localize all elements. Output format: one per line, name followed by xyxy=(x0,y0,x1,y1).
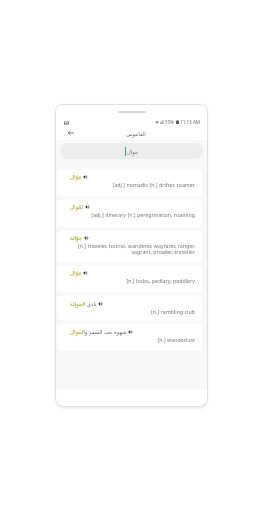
button[interactable]: جَوّال xyxy=(58,266,202,292)
staticText: [adj.] itinerary [n.] peregrination, roa… xyxy=(70,211,195,218)
staticText: جَوّال xyxy=(70,174,82,180)
button[interactable]: شهوة حب السفر والجوال xyxy=(58,324,202,351)
button[interactable]: نادي الجوالة xyxy=(58,296,202,320)
staticText: جوال xyxy=(127,149,139,155)
staticText: 55% xyxy=(165,119,175,125)
staticText: [n.] rambling club xyxy=(70,308,195,315)
staticText: تَجْوال xyxy=(70,204,84,210)
staticText: [n.] wanderlust xyxy=(70,336,195,343)
staticText: جَوّال xyxy=(70,270,82,276)
button[interactable]: تَجْوال xyxy=(58,200,202,227)
staticText: 11:13 AM xyxy=(180,119,201,125)
staticText: جَوّالة xyxy=(70,235,83,241)
staticText: [adj.] nomadic [n.] drifter, roamer xyxy=(70,181,195,188)
button[interactable]: جَوّالة xyxy=(58,231,202,262)
staticText: القاموس xyxy=(126,131,146,137)
staticText: [n.] hobo, pedlary, peddlery xyxy=(70,277,195,284)
button[interactable]: جوال xyxy=(60,143,203,159)
button[interactable]: Back xyxy=(64,126,77,139)
staticText: [n.] traveler, tourist, wanderer, wayfar… xyxy=(70,242,195,256)
staticText: نادي الجوالة xyxy=(70,300,97,307)
staticText: شهوة حب السفر والجوال xyxy=(70,328,127,335)
button[interactable]: جَوّال xyxy=(58,170,202,196)
